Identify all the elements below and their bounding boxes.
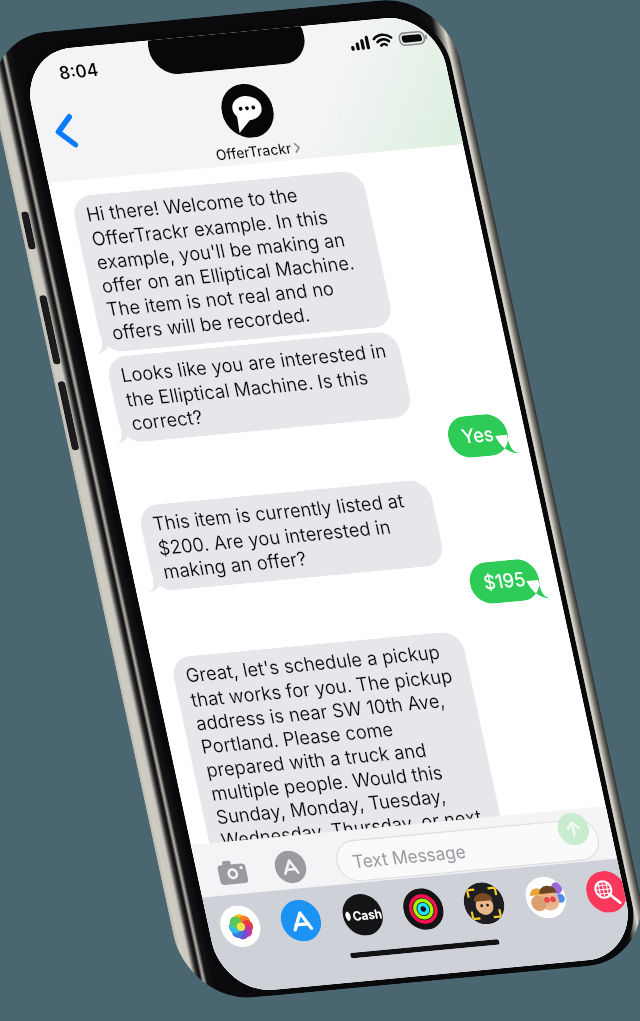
button[interactable]: Memoji: [445, 864, 523, 943]
button[interactable]: Photos: [201, 887, 279, 966]
button[interactable]: Yes: [429, 383, 535, 488]
button[interactable]: This item is currently listed at $200. A…: [98, 349, 477, 722]
staticText: OfferTrackr: [207, 106, 300, 196]
staticText: This item is currently listed at $200. A…: [125, 372, 457, 698]
button[interactable]: Apps: [260, 836, 321, 898]
staticText: Looks like you are interested in the Ell…: [93, 224, 425, 550]
button[interactable]: $195: [451, 524, 566, 639]
button[interactable]: Back: [27, 93, 103, 170]
button[interactable]: Image search: [567, 853, 640, 930]
staticText: Cash: [346, 893, 389, 936]
staticText: $195: [473, 550, 536, 613]
button[interactable]: Text Message: [317, 704, 618, 997]
button[interactable]: Apple Cash: [324, 875, 402, 954]
staticText: Hi there! Welcome to the OfferTrackr exa…: [33, 63, 431, 460]
button[interactable]: App Store: [262, 881, 340, 960]
staticText: 8:04: [49, 41, 108, 100]
button[interactable]: Hi there! Welcome to the OfferTrackr exa…: [6, 40, 451, 484]
staticText: Text Message: [343, 791, 475, 921]
staticText: Great, let's schedule a pickup that work…: [116, 524, 557, 967]
button[interactable]: Camera: [204, 845, 259, 900]
button[interactable]: Memoji stickers: [507, 858, 585, 937]
button[interactable]: Send: [543, 798, 604, 860]
button[interactable]: Great, let's schedule a pickup that work…: [88, 501, 578, 991]
button[interactable]: Fitness: [384, 869, 462, 949]
button[interactable]: Looks like you are interested in the Ell…: [66, 201, 445, 574]
button[interactable]: OfferTrackr contact: [197, 59, 298, 162]
staticText: Yes: [451, 409, 505, 463]
